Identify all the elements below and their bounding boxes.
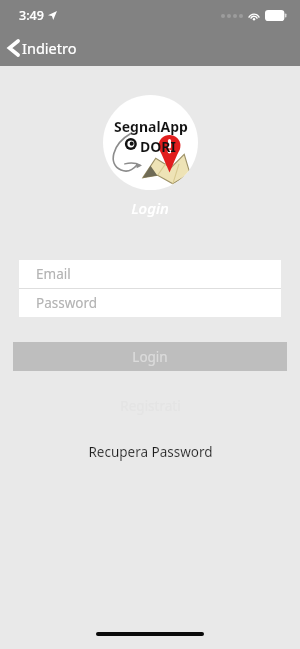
button[interactable]: Email [19,260,281,288]
button[interactable]: Recupera Password [0,439,300,465]
staticText: Email [36,265,71,283]
other: SegnalApp Odori logo [103,95,198,190]
staticText: SegnalApp [114,117,188,136]
staticText: Indietro [22,38,77,58]
button[interactable]: Login [13,342,287,371]
staticText: Password [36,294,98,312]
staticText: DORI [140,137,176,156]
button[interactable]: Password [19,289,281,317]
staticText: Login [0,198,300,218]
staticText: Recupera Password [88,443,213,461]
button[interactable]: Indietro [0,34,87,62]
staticText: Login [132,348,168,366]
staticText: 3:49 [19,7,44,24]
